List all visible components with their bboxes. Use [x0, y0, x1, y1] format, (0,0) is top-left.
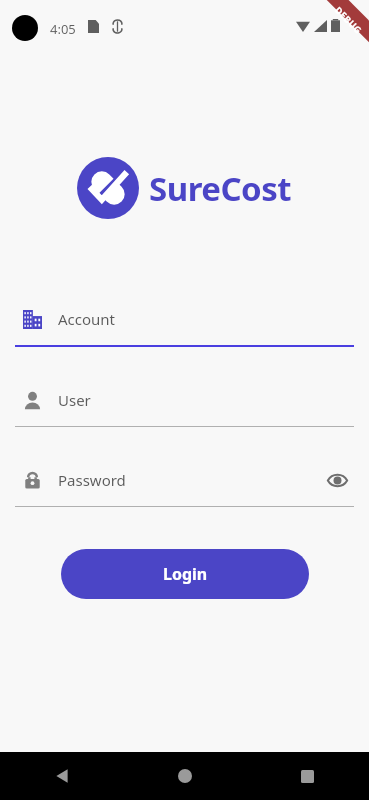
- button[interactable]: Back: [0, 752, 123, 800]
- button[interactable]: Login: [61, 549, 309, 599]
- button[interactable]: Recent apps: [246, 752, 369, 800]
- button[interactable]: User: [15, 383, 354, 427]
- button[interactable]: Home: [123, 752, 246, 800]
- staticText: SureCost: [149, 166, 292, 211]
- button[interactable]: Password: [15, 463, 354, 507]
- staticText: User: [58, 390, 354, 410]
- button[interactable]: Account: [15, 302, 354, 347]
- staticText: Login: [163, 563, 208, 585]
- button[interactable]: Show password: [320, 463, 354, 497]
- staticText: Account: [58, 309, 354, 329]
- staticText: Password: [58, 470, 320, 490]
- staticText: DEBUG: [333, 4, 365, 36]
- staticText: 4:05: [50, 20, 76, 38]
